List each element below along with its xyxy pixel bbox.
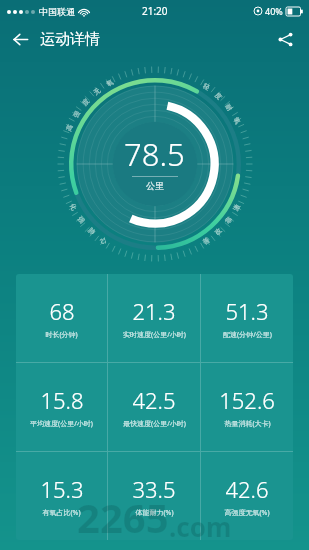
staticText: 热量消耗(大卡) (224, 419, 271, 429)
staticText: 40% (265, 5, 283, 17)
staticText: 21.3 (132, 296, 176, 326)
button[interactable]: 152.6 (201, 363, 293, 451)
staticText: 33.5 (132, 474, 176, 504)
staticText: 运动详情 (40, 30, 100, 49)
button[interactable]: Share (265, 22, 305, 56)
button[interactable]: 15.8 (16, 363, 107, 451)
staticText: 15.8 (40, 385, 84, 415)
staticText: 高强度无氧(%) (224, 508, 270, 518)
staticText: 42.5 (132, 385, 176, 415)
staticText: 平均速度(公里/小时) (30, 419, 93, 429)
staticText: 有氧占比(%) (42, 508, 81, 518)
staticText: 实时速度(公里/小时) (123, 330, 186, 340)
staticText: 51.3 (225, 296, 269, 326)
staticText: 体能耐力(%) (135, 508, 174, 518)
button[interactable]: Back (0, 22, 40, 56)
button[interactable]: 42.6 (201, 452, 293, 540)
staticText: 中国联通 (39, 6, 75, 17)
button[interactable]: 68 (16, 274, 107, 362)
button[interactable]: 33.5 (108, 452, 200, 540)
staticText: 15.3 (40, 474, 84, 504)
staticText: 2265 (77, 490, 169, 544)
staticText: 时长(分钟) (45, 330, 78, 340)
staticText: 152.6 (219, 385, 275, 415)
button[interactable]: 42.5 (108, 363, 200, 451)
button[interactable]: 15.3 (16, 452, 107, 540)
staticText: 21:20 (142, 4, 168, 18)
staticText: 公里 (146, 180, 164, 191)
button[interactable]: 51.3 (201, 274, 293, 362)
button[interactable]: 21.3 (108, 274, 200, 362)
staticText: 78.5 (124, 133, 185, 175)
staticText: 配速(分钟/公里) (223, 330, 272, 340)
staticText: 68 (49, 296, 75, 326)
staticText: 42.6 (225, 474, 269, 504)
staticText: 最快速度(公里/小时) (123, 419, 186, 429)
staticText: .com (169, 509, 232, 544)
